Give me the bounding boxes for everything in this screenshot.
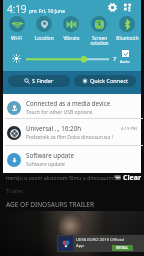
button[interactable]: Wi-Fi: [3, 16, 30, 45]
staticText: meniju u ovom akcionom filmu o dinosauri…: [6, 174, 119, 181]
button[interactable]: Bluetooth: [113, 16, 141, 45]
staticText: Vibrate: [63, 35, 80, 42]
staticText: INSTALL: [116, 246, 129, 250]
staticText: Auto: [120, 58, 130, 64]
staticText: Location: [34, 35, 54, 42]
staticText: Connected as a media device: [26, 99, 111, 107]
button[interactable]: Edit quick settings: [122, 1, 134, 13]
button[interactable]: INSTALL: [112, 245, 133, 251]
staticText: 4:19 PM: [121, 126, 137, 132]
staticText: Screen rotation: [90, 35, 109, 45]
button[interactable]: UEFA EURO 2016 Official: [57, 235, 144, 252]
staticText: Wi-Fi: [11, 35, 22, 42]
staticText: Bluetooth: [116, 35, 139, 42]
staticText: Touch for other USB options.: [26, 109, 94, 116]
staticText: Fri, 10 June: [39, 8, 65, 15]
staticText: Podsetnik za film Doba dinosaurusa !: [26, 134, 113, 141]
button[interactable]: Auto: [120, 50, 130, 64]
staticText: Software update: [26, 161, 65, 168]
staticText: Quick Connect: [90, 77, 129, 85]
button[interactable]: Quick Connect: [74, 75, 136, 87]
button[interactable]: Vibrate: [57, 16, 85, 45]
button[interactable]: Connected as a media device: [3, 97, 141, 118]
button[interactable]: Software update: [3, 149, 141, 170]
staticText: Trailer: [6, 187, 24, 195]
button[interactable]: Clear: [114, 173, 142, 182]
staticText: AGE OF DINOSAURS TRAILER: [6, 200, 95, 209]
button[interactable]: [25, 53, 109, 65]
button[interactable]: Universal .., 16:20h: [3, 122, 141, 143]
staticText: App: [76, 243, 84, 249]
staticText: 4:19: [7, 2, 27, 16]
button[interactable]: Screen rotation: [85, 16, 113, 45]
staticText: UEFA EURO 2016 Official: [76, 237, 125, 243]
staticText: S Finder: [32, 77, 54, 85]
staticText: Software update: [26, 151, 74, 159]
staticText: pm: [29, 8, 37, 15]
staticText: Clear: [123, 173, 142, 182]
button[interactable]: Settings: [106, 1, 118, 13]
button[interactable]: S Finder: [8, 75, 70, 87]
staticText: Universal .., 16:20h: [26, 124, 81, 132]
staticText: 7: [113, 55, 117, 63]
button[interactable]: Location: [30, 16, 57, 45]
